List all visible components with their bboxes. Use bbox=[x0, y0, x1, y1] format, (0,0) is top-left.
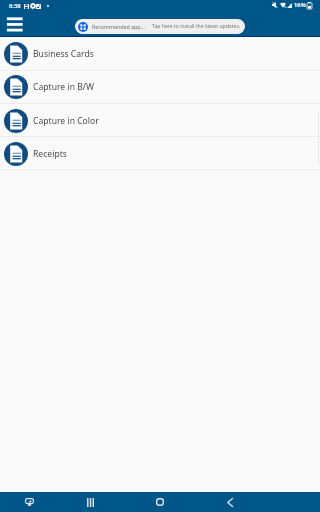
staticText: Tap here to install the latest updates. bbox=[152, 23, 241, 30]
button[interactable]: Business Cards bbox=[0, 37, 320, 70]
staticText: Capture in B/W bbox=[33, 81, 94, 93]
button[interactable]: Capture in B/W bbox=[0, 70, 320, 103]
button[interactable]: Receipts bbox=[0, 137, 320, 170]
button[interactable]: Recent apps bbox=[76, 492, 104, 512]
button[interactable]: Capture in Color bbox=[0, 104, 320, 137]
button[interactable]: Screenshot bbox=[15, 492, 43, 512]
staticText: Capture in Color bbox=[33, 115, 99, 127]
staticText: Recommended app... bbox=[92, 23, 145, 30]
button[interactable]: Recommended app... bbox=[75, 19, 245, 34]
staticText: 16% bbox=[294, 1, 306, 9]
staticText: Receipts bbox=[33, 148, 67, 160]
button[interactable]: Open navigation menu bbox=[2, 13, 26, 36]
staticText: Business Cards bbox=[33, 48, 94, 60]
button[interactable]: Home bbox=[146, 492, 174, 512]
button[interactable]: Back bbox=[216, 492, 244, 512]
staticText: 6:38 bbox=[9, 2, 21, 10]
